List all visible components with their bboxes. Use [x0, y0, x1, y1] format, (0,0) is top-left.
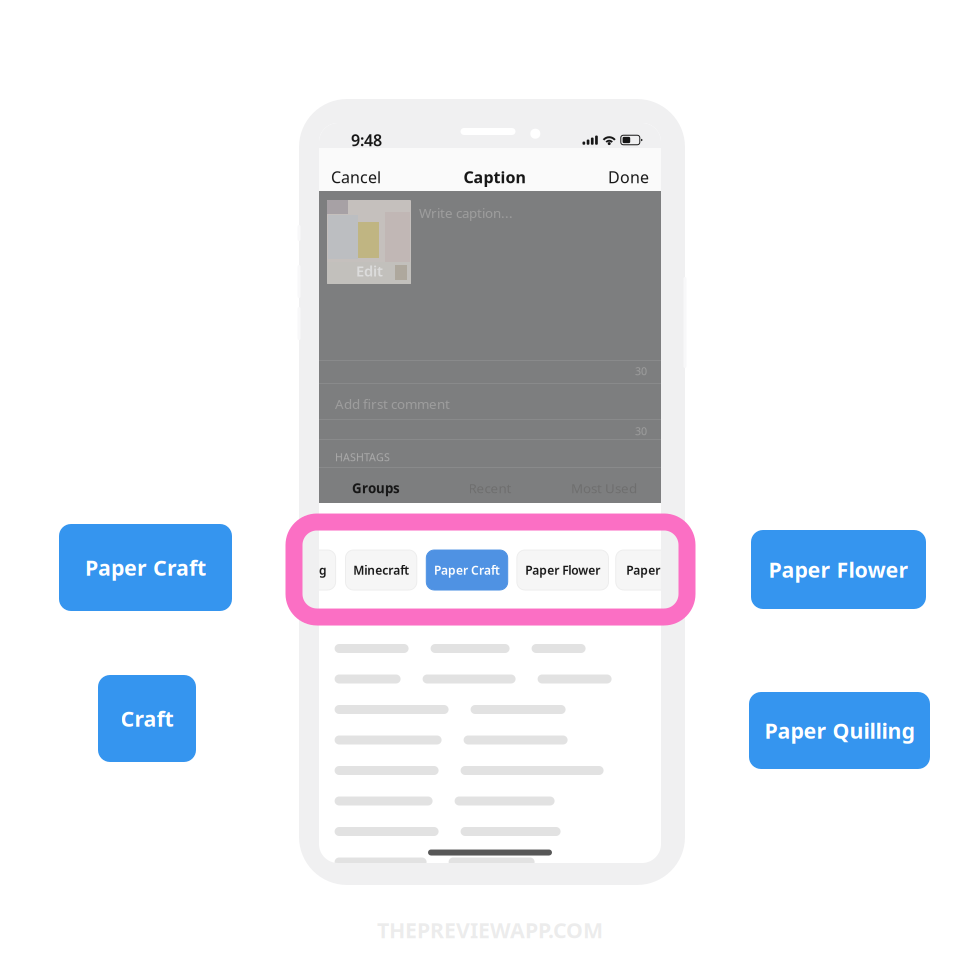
- staticText: Paper Flower: [768, 555, 908, 584]
- staticText: Paper Quill: [626, 562, 689, 578]
- staticText: Paper Quilling: [764, 716, 914, 745]
- staticText: 30: [635, 424, 647, 438]
- button[interactable]: Craft: [98, 675, 196, 762]
- staticText: Done: [608, 166, 649, 188]
- button[interactable]: Most Used: [547, 473, 661, 503]
- staticText: Edit: [356, 261, 383, 280]
- staticText: Add first comment: [335, 395, 450, 413]
- staticText: Paper Flower: [525, 562, 600, 578]
- staticText: Write caption...: [419, 204, 513, 222]
- staticText: Groups: [352, 479, 400, 497]
- button[interactable]: Paper Flower: [517, 550, 608, 590]
- staticText: Craft: [120, 704, 173, 733]
- staticText: 9:48: [351, 129, 382, 151]
- button[interactable]: Paper Craft: [426, 550, 508, 590]
- button[interactable]: Paper Quilling: [749, 692, 930, 769]
- staticText: 30: [635, 364, 647, 378]
- staticText: Minecraft: [353, 562, 409, 578]
- staticText: Quilling: [282, 562, 327, 578]
- staticText: Recent: [468, 479, 511, 497]
- staticText: Paper Craft: [85, 553, 206, 582]
- staticText: HASHTAGS: [335, 450, 390, 464]
- button[interactable]: Paper Craft: [59, 524, 232, 611]
- button[interactable]: Minecraft: [345, 550, 417, 590]
- button[interactable]: Done: [608, 161, 649, 193]
- button[interactable]: Paper Quill: [616, 550, 700, 590]
- staticText: Caption: [463, 166, 525, 188]
- button[interactable]: Quilling: [274, 550, 336, 590]
- staticText: Paper Craft: [434, 562, 500, 578]
- button[interactable]: Paper Flower: [751, 530, 926, 609]
- button[interactable]: Cancel: [331, 161, 381, 193]
- staticText: Most Used: [571, 479, 637, 497]
- button[interactable]: Groups: [319, 473, 433, 503]
- staticText: Cancel: [331, 166, 381, 188]
- staticText: THEPREVIEWAPP.COM: [377, 916, 603, 944]
